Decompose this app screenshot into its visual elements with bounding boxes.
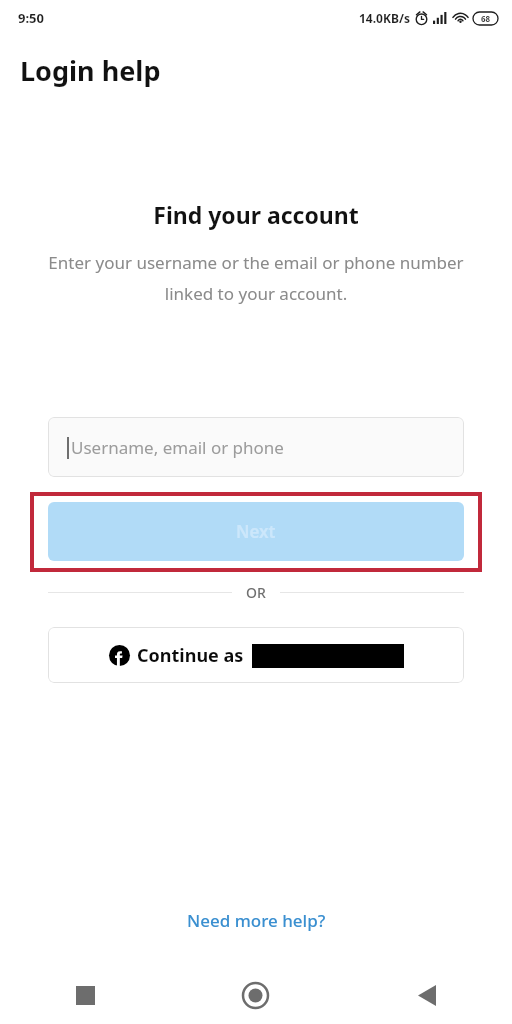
staticText: Need more help?: [187, 909, 326, 932]
button[interactable]: Next: [48, 502, 464, 561]
button[interactable]: Home: [170, 966, 341, 1024]
staticText: Continue as: [137, 643, 244, 668]
staticText: Username, email or phone: [71, 436, 284, 459]
staticText: Find your account: [0, 199, 512, 230]
button[interactable]: Back: [341, 966, 512, 1024]
staticText: Next: [236, 520, 276, 543]
staticText: 68: [481, 13, 491, 24]
button[interactable]: Recents: [0, 966, 170, 1024]
button[interactable]: Username, email or phone: [48, 417, 464, 477]
staticText: Login help: [20, 52, 161, 89]
button[interactable]: Continue as: [48, 627, 464, 683]
staticText: 14.0KB/s: [359, 10, 410, 26]
button[interactable]: Need more help?: [181, 903, 332, 938]
staticText: Enter your username or the email or phon…: [48, 251, 464, 305]
staticText: OR: [246, 583, 266, 602]
staticText: 9:50: [18, 9, 44, 27]
